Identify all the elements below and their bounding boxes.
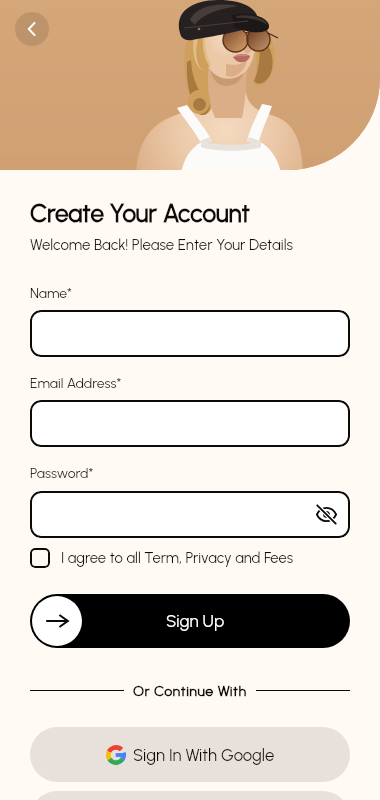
button[interactable]	[30, 400, 350, 447]
staticText: Password*	[30, 465, 94, 482]
other: Continue	[32, 596, 82, 646]
button[interactable]	[30, 310, 350, 357]
button[interactable]: Sign In With Apple	[30, 791, 350, 800]
button[interactable]: Show password	[30, 491, 350, 538]
button[interactable]: I agree to all Term, Privacy and Fees	[30, 547, 350, 569]
button[interactable]: Show password	[316, 504, 337, 525]
staticText: Welcome Back! Please Enter Your Details	[30, 236, 293, 254]
button[interactable]: Sign In With Google	[30, 727, 350, 782]
staticText: I agree to all Term, Privacy and Fees	[61, 549, 294, 567]
staticText: Email Address*	[30, 375, 122, 392]
button[interactable]: Sign Up	[30, 594, 350, 648]
button[interactable]: Back	[15, 12, 49, 46]
staticText: Name*	[30, 285, 73, 302]
staticText: Create Your Account	[30, 199, 250, 228]
staticText: Sign Up	[166, 611, 225, 631]
staticText: Or Continue With	[133, 682, 247, 699]
staticText: Sign In With Google	[133, 745, 275, 765]
